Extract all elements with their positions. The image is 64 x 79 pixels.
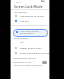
other: Toggle emergency calls: [42, 61, 47, 64]
staticText: 9:41: [16, 0, 21, 3]
staticText: Emergency calls: [13, 60, 32, 63]
button[interactable]: Use pattern to unlock: [12, 14, 50, 19]
button[interactable]: Emergency calls: [12, 60, 50, 66]
staticText: Advanced lock settings: [13, 57, 36, 60]
staticText: Use pattern to unlock: [20, 14, 45, 17]
staticText: Lock after timeout: [20, 30, 39, 33]
staticText: Use PIN: [20, 19, 29, 22]
staticText: 30 s: [20, 41, 24, 44]
staticText: Lock method: [14, 11, 27, 14]
staticText: Power button locks: [20, 46, 42, 49]
button[interactable]: Power button locks: [12, 46, 50, 51]
button[interactable]: Show notifications on lock: [12, 51, 50, 56]
staticText: Learn more about screen lock: [14, 64, 42, 67]
staticText: Recommended: [20, 32, 34, 35]
button[interactable]: Lock after timeout: [13, 29, 48, 37]
button[interactable]: Use PIN: [12, 19, 50, 24]
staticText: ▮▮▮: [41, 0, 45, 2]
staticText: Timeout delay: [14, 37, 28, 40]
staticText: Screen Lock Mode: [14, 4, 43, 8]
staticText: Show notifications on lock: [20, 51, 50, 54]
